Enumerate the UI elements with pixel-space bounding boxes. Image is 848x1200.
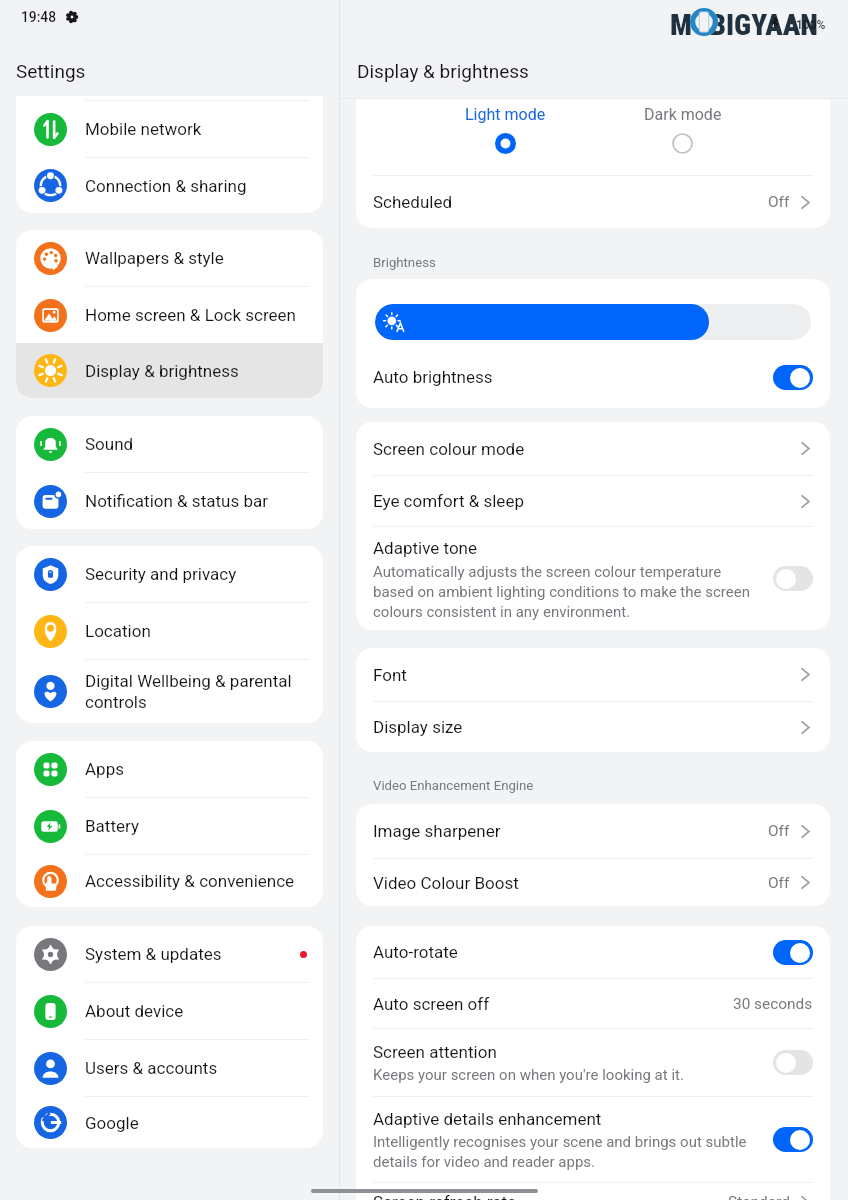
button[interactable]: Users & accounts xyxy=(16,1040,323,1096)
staticText: Mobile network xyxy=(85,119,307,139)
staticText: Settings xyxy=(16,60,86,82)
staticText: Adaptive tone xyxy=(373,538,478,558)
button[interactable]: Display size xyxy=(356,702,830,752)
button[interactable]: Location xyxy=(16,603,323,659)
button[interactable]: On xyxy=(773,940,813,965)
button[interactable]: Image sharpener xyxy=(356,804,830,858)
button[interactable]: Screen colour mode xyxy=(356,422,830,475)
button[interactable]: Digital Wellbeing & parental controls xyxy=(16,660,323,723)
button[interactable]: System & updates xyxy=(16,926,323,982)
staticText: Adaptive details enhancement xyxy=(373,1109,602,1129)
button[interactable]: Google xyxy=(16,1097,323,1148)
button[interactable]: Security and privacy xyxy=(16,546,323,602)
button[interactable]: Brightness xyxy=(375,304,811,340)
button[interactable]: Off xyxy=(773,1050,813,1075)
button[interactable]: Sound xyxy=(16,416,323,472)
button[interactable]: Scheduled xyxy=(356,176,830,228)
staticText: About device xyxy=(85,1001,307,1021)
staticText: Automatically adjusts the screen colour … xyxy=(373,563,753,620)
staticText: Eye comfort & sleep xyxy=(373,491,798,511)
staticText: Wallpapers & style xyxy=(85,248,307,268)
staticText: Accessibility & convenience xyxy=(85,871,307,891)
button[interactable]: Apps xyxy=(16,741,323,797)
button[interactable]: Auto brightness xyxy=(356,346,830,408)
staticText: Screen refresh rate xyxy=(373,1192,728,1200)
button[interactable]: Light mode xyxy=(443,99,568,160)
staticText: Users & accounts xyxy=(85,1058,307,1078)
staticText: Screen attention xyxy=(373,1042,497,1062)
staticText: System & updates xyxy=(85,944,294,964)
staticText: Brightness xyxy=(373,255,436,270)
button[interactable]: Accessibility & convenience xyxy=(16,855,323,907)
staticText: Auto screen off xyxy=(373,994,733,1014)
staticText: Font xyxy=(373,665,798,685)
button[interactable]: Mobile network xyxy=(16,101,323,157)
staticText: Auto brightness xyxy=(373,367,773,387)
staticText: Screen colour mode xyxy=(373,439,798,459)
button[interactable]: Auto-rotate xyxy=(356,926,830,978)
staticText: Off xyxy=(768,874,790,892)
staticText: Connection & sharing xyxy=(85,176,307,196)
staticText: MOBIGYAAN xyxy=(670,8,818,42)
staticText: Google xyxy=(85,1113,307,1133)
button[interactable]: Display & brightness xyxy=(16,343,323,398)
button[interactable]: Auto screen off xyxy=(356,979,830,1028)
button[interactable]: Screen refresh rate xyxy=(356,1183,830,1200)
button[interactable]: Font xyxy=(356,648,830,701)
button[interactable]: Video Colour Boost xyxy=(356,859,830,906)
staticText: Off xyxy=(768,193,790,211)
staticText: Display & brightness xyxy=(85,361,307,381)
staticText: Standard xyxy=(728,1193,790,1200)
button[interactable]: Home screen & Lock screen xyxy=(16,287,323,343)
staticText: Intelligently recognises your scene and … xyxy=(373,1133,753,1170)
button[interactable]: Adaptive details enhancement xyxy=(356,1097,830,1182)
button[interactable]: Settings shortcut xyxy=(62,7,81,26)
button[interactable]: Adaptive tone xyxy=(356,527,830,630)
staticText: Digital Wellbeing & parental controls xyxy=(85,671,307,712)
staticText: Security and privacy xyxy=(85,564,307,584)
staticText: Auto-rotate xyxy=(373,942,773,962)
button[interactable]: Off xyxy=(773,566,813,591)
button[interactable]: On xyxy=(773,365,813,390)
staticText: Keeps your screen on when you're looking… xyxy=(373,1066,684,1084)
staticText: Apps xyxy=(85,759,307,779)
staticText: Notification & status bar xyxy=(85,491,307,511)
button[interactable]: Eye comfort & sleep xyxy=(356,476,830,526)
staticText: Scheduled xyxy=(373,192,768,212)
button[interactable]: On xyxy=(773,1127,813,1152)
staticText: Location xyxy=(85,621,307,641)
staticText: Sound xyxy=(85,434,307,454)
staticText: Image sharpener xyxy=(373,821,768,841)
staticText: Display & brightness xyxy=(357,60,529,82)
staticText: Light mode xyxy=(465,105,546,124)
staticText: Dark mode xyxy=(644,105,722,124)
staticText: Video Colour Boost xyxy=(373,873,768,893)
staticText: Battery xyxy=(85,816,307,836)
staticText: 19:48 xyxy=(21,9,57,25)
staticText: 30 seconds xyxy=(733,995,813,1013)
staticText: Video Enhancement Engine xyxy=(373,778,534,793)
button[interactable]: Battery xyxy=(16,798,323,854)
staticText: 100% xyxy=(796,18,826,32)
staticText: Home screen & Lock screen xyxy=(85,305,307,325)
button[interactable]: Screen attention xyxy=(356,1029,830,1096)
button[interactable]: About device xyxy=(16,983,323,1039)
staticText: Off xyxy=(768,822,790,840)
staticText: Display size xyxy=(373,717,798,737)
button[interactable]: Dark mode xyxy=(620,99,745,160)
button[interactable]: Connection & sharing xyxy=(16,158,323,213)
button[interactable]: Notification & status bar xyxy=(16,473,323,529)
button[interactable]: Wallpapers & style xyxy=(16,230,323,286)
